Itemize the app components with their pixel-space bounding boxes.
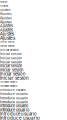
staticText: Ajustes <box>0 31 14 37</box>
staticText: Ajustes <box>0 1 7 3</box>
staticText: Ajustes <box>0 12 12 16</box>
staticText: Ajustes <box>0 20 12 24</box>
staticText: Iniciar sesión <box>0 71 26 77</box>
staticText: Ajustes <box>0 16 12 20</box>
staticText: Iniciar sesión <box>0 56 22 60</box>
staticText: Iniciar sesión <box>0 75 29 81</box>
staticText: Iniciar sesión <box>0 41 14 43</box>
staticText: Ajustes <box>0 24 13 28</box>
staticText: Iniciar sesión <box>0 44 14 47</box>
staticText: Iniciar sesión <box>0 52 22 56</box>
staticText: Introduce usuario <box>0 108 29 112</box>
staticText: Iniciar sesión <box>0 64 22 68</box>
staticText: Ajustes <box>0 28 13 32</box>
staticText: Introduce usuario <box>0 81 17 83</box>
staticText: Introduce usuario <box>0 92 28 96</box>
staticText: Introduce usuario <box>0 115 40 120</box>
staticText: Iniciar sesión <box>0 60 22 64</box>
staticText: Introduce usuario <box>0 88 26 92</box>
staticText: Introduce usuario <box>0 111 37 117</box>
staticText: Iniciar sesión <box>0 48 19 52</box>
staticText: Ajustes <box>0 8 10 12</box>
staticText: Introduce usuario <box>0 104 28 108</box>
staticText: Introduce usuario <box>0 84 17 87</box>
staticText: Introduce usuario <box>0 100 28 104</box>
staticText: Ajustes <box>0 4 8 7</box>
staticText: Introduce usuario <box>0 96 28 100</box>
staticText: Iniciar sesión <box>0 68 23 72</box>
staticText: Ajustes <box>0 35 15 41</box>
